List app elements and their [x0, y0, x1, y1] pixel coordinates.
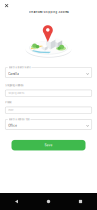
- button[interactable]: Save: [11, 140, 85, 150]
- staticText: Search a Branch Name: [9, 66, 31, 69]
- staticText: Search a Address Type: [9, 118, 30, 121]
- staticText: Shipping address: [8, 92, 24, 94]
- button[interactable]: Back: [0, 193, 32, 210]
- staticText: Save: [44, 143, 52, 147]
- button[interactable]: Home: [32, 193, 64, 210]
- button[interactable]: Recent apps: [64, 193, 96, 210]
- staticText: Shipping Address: [5, 84, 23, 87]
- staticText: Office: [8, 124, 17, 127]
- staticText: Create New Shipping Address: [28, 11, 68, 14]
- staticText: Phone: [8, 109, 13, 111]
- staticText: Phone: [5, 101, 11, 104]
- staticText: Camilla: [8, 72, 19, 76]
- button[interactable]: Close: [2, 1, 12, 11]
